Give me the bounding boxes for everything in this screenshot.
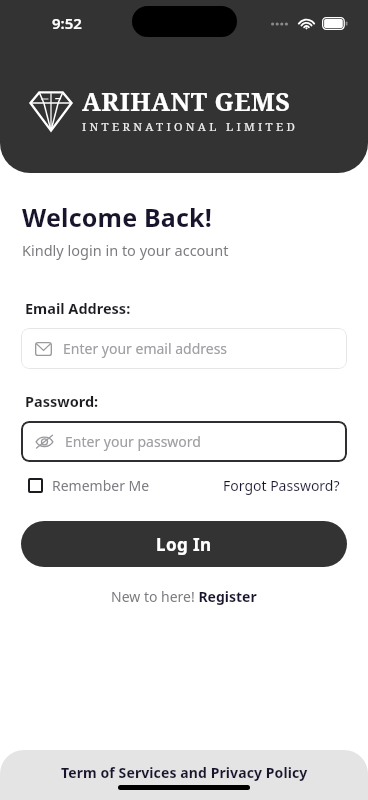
staticText: Enter your email address [63,339,228,358]
button[interactable]: Forgot Password? [223,476,340,495]
button[interactable]: New to here! Register [111,587,257,606]
staticText: 9:52 [52,13,82,33]
staticText: Email Address: [25,298,131,318]
staticText: Password: [25,391,99,411]
staticText: Forgot Password? [223,476,340,495]
staticText: Enter your password [65,432,201,451]
staticText: Term of Services and Privacy Policy [61,763,308,782]
staticText: Welcome Back! [22,200,213,234]
staticText: ARIHANT GEMS [82,84,291,118]
staticText: INTERNATIONAL LIMITED [82,119,299,135]
staticText: New to here! Register [111,587,257,606]
button[interactable]: Term of Services and Privacy Policy [61,763,308,782]
staticText: Log In [156,533,212,556]
button[interactable]: Log In [21,521,347,567]
button[interactable]: Show password [35,434,54,449]
button[interactable]: Show password [21,421,347,462]
button[interactable]: Remember Me [28,476,150,495]
button[interactable]: Enter your email address [21,328,347,369]
staticText: Remember Me [52,476,150,495]
staticText: Kindly login in to your account [22,240,229,260]
